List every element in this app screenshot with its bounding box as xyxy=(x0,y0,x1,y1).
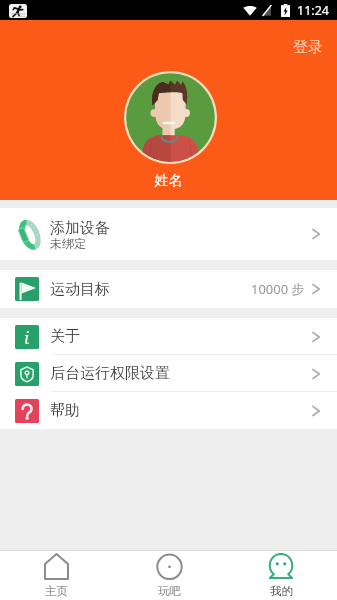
staticText: 未绑定 xyxy=(50,236,86,251)
staticText: i xyxy=(24,326,30,349)
staticText: 关于 xyxy=(50,327,312,346)
staticText: 11:24 xyxy=(297,2,329,19)
button[interactable]: 后台运行权限设置 xyxy=(0,355,337,392)
staticText: 运动目标 xyxy=(50,280,251,299)
staticText: 玩吧 xyxy=(158,584,181,598)
staticText: 添加设备 xyxy=(50,219,110,238)
staticText: 主页 xyxy=(45,584,68,598)
other: Step counter notification xyxy=(9,4,27,18)
button[interactable]: 运动目标 xyxy=(0,270,337,308)
button[interactable]: 玩吧 xyxy=(113,551,225,600)
staticText: 登录 xyxy=(293,38,323,57)
button[interactable]: 我的 xyxy=(225,551,337,600)
button[interactable]: 登录 xyxy=(288,33,328,62)
button[interactable]: 添加设备 xyxy=(0,208,337,260)
staticText: 帮助 xyxy=(50,401,312,420)
button[interactable]: 帮助 xyxy=(0,392,337,429)
staticText: 10000 步 xyxy=(251,280,305,298)
staticText: 姓名 xyxy=(0,172,337,190)
staticText: 我的 xyxy=(270,584,293,598)
button[interactable]: 主页 xyxy=(0,551,113,600)
button[interactable]: i xyxy=(0,318,337,355)
staticText: 后台运行权限设置 xyxy=(50,364,312,383)
